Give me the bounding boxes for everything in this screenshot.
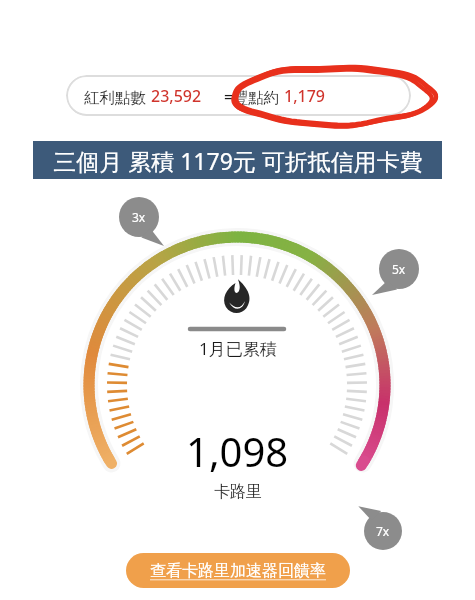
staticText: =豐點約 — [224, 86, 284, 107]
button[interactable]: 查看卡路里加速器回饋率 — [126, 553, 350, 588]
staticText: 23,592 — [151, 85, 202, 107]
staticText: 3x — [132, 209, 146, 225]
staticText: 1,179 — [284, 85, 325, 107]
staticText: 紅利點數 — [84, 86, 151, 107]
button[interactable]: 紅利點數 — [66, 75, 411, 116]
staticText: 5x — [392, 261, 406, 277]
staticText: 卡路里 — [214, 482, 262, 502]
staticText: 1,098 — [186, 424, 289, 478]
staticText: 1月已累積 — [199, 337, 277, 360]
staticText: 三個月 累積 1179元 可折抵信用卡費 — [53, 145, 423, 176]
staticText: 7x — [376, 523, 390, 539]
staticText: 查看卡路里加速器回饋率 — [150, 561, 326, 581]
